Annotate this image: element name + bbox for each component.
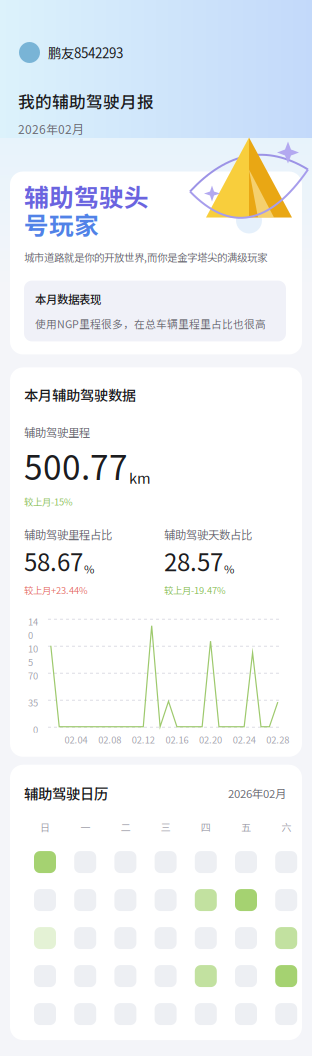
staticText: 140 [28,615,38,642]
staticText: km [129,467,151,488]
staticText: % [84,560,94,577]
staticText: 02.12 [132,733,155,746]
staticText: 本月数据表现 [35,291,101,307]
staticText: 号玩家 [24,206,99,242]
staticText: 五 [241,820,251,834]
staticText: 城市道路就是你的开放世界,而你是金字塔尖的满级玩家 [24,249,267,265]
staticText: 02.04 [64,733,87,746]
staticText: 500.77 [24,441,128,490]
staticText: 辅助驾驶里程 [24,424,90,440]
staticText: 02.28 [266,733,289,746]
staticText: 02.20 [199,733,222,746]
staticText: 0 [33,723,38,736]
staticText: 58.67 [24,543,83,578]
staticText: % [224,560,234,577]
staticText: 70 [28,669,38,682]
staticText: 二 [120,820,130,834]
staticText: 较上月-15% [24,495,73,508]
staticText: 02.08 [98,733,121,746]
staticText: 28.57 [164,543,223,578]
staticText: 四 [201,820,211,834]
staticText: 我的辅助驾驶月报 [18,89,154,113]
staticText: 2026年02月 [228,785,286,801]
staticText: 02.16 [165,733,188,746]
staticText: 辅助驾驶天数占比 [164,526,252,542]
staticText: 辅助驾驶头 [24,178,149,214]
staticText: 较上月-19.47% [164,583,226,597]
staticText: 一 [80,820,90,834]
staticText: 三 [161,820,171,834]
staticText: 35 [28,696,38,709]
staticText: 105 [28,642,38,669]
staticText: 六 [281,820,291,834]
button[interactable]: 鹏友8542293 [0,42,312,63]
staticText: 02.24 [233,733,256,746]
staticText: 本月辅助驾驶数据 [24,384,136,405]
staticText: 使用NGP里程很多，在总车辆里程里占比也很高 [35,316,266,331]
staticText: 日 [40,820,50,834]
staticText: 较上月+23.44% [24,583,88,597]
staticText: 鹏友8542293 [48,43,123,62]
staticText: 辅助驾驶里程占比 [24,526,112,542]
staticText: 辅助驾驶日历 [24,783,108,804]
staticText: 2026年02月 [18,120,84,137]
